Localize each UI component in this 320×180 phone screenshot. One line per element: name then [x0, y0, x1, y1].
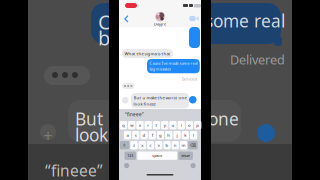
button[interactable]: w — [128, 121, 135, 129]
button[interactable]: ⇧ — [120, 141, 129, 149]
staticText: f — [152, 132, 153, 138]
button[interactable]: a — [124, 131, 131, 139]
staticText: p — [196, 122, 199, 128]
staticText: But u make the worst one — [133, 95, 186, 100]
staticText: Delivered — [182, 77, 197, 81]
button[interactable]: q — [120, 121, 127, 129]
button[interactable]: y — [161, 121, 168, 129]
button[interactable]: ⌫ — [188, 141, 198, 149]
button[interactable]: z — [130, 141, 138, 149]
staticText: big mistakes — [149, 66, 171, 72]
staticText: j — [177, 132, 178, 138]
button[interactable]: n — [172, 141, 179, 149]
staticText: Dayjre — [154, 21, 166, 27]
staticText: e — [139, 122, 141, 128]
button[interactable]: r — [145, 121, 152, 129]
staticText: What the sigma is that — [124, 51, 170, 56]
staticText: space — [152, 153, 162, 158]
button[interactable]: Emoji keyboard — [124, 163, 129, 168]
staticText: s — [135, 132, 137, 138]
staticText: k — [184, 132, 186, 138]
staticText: r — [147, 122, 149, 128]
staticText: x — [141, 142, 143, 148]
staticText: But u — [75, 107, 119, 131]
staticText: q — [122, 122, 125, 128]
staticText: g — [159, 132, 162, 138]
button[interactable]: o — [186, 121, 193, 129]
button[interactable]: c — [147, 141, 154, 149]
button[interactable]: d — [140, 131, 148, 139]
staticText: d — [143, 132, 146, 138]
staticText: b — [165, 142, 168, 148]
staticText: w — [130, 122, 133, 128]
button[interactable]: b — [163, 141, 171, 149]
button[interactable]: i — [178, 121, 185, 129]
staticText: return — [181, 153, 190, 158]
button[interactable]: l — [190, 131, 197, 139]
staticText: 123 — [127, 153, 133, 158]
staticText: b — [98, 24, 110, 51]
staticText: z — [133, 142, 135, 148]
staticText: ⌫ — [190, 143, 196, 148]
staticText: h — [167, 132, 170, 138]
button[interactable]: space — [137, 151, 177, 160]
button[interactable]: u — [169, 121, 177, 129]
staticText: look fineee — [133, 101, 155, 107]
staticText: “fineee” — [125, 111, 144, 118]
button[interactable]: t — [153, 121, 160, 129]
button[interactable]: s — [132, 131, 139, 139]
button[interactable]: x — [139, 141, 146, 149]
button[interactable]: j — [173, 131, 181, 139]
button[interactable]: g — [157, 131, 164, 139]
staticText: C — [98, 8, 111, 35]
staticText: u — [171, 122, 174, 128]
button[interactable]: Dictation — [190, 163, 196, 168]
staticText: l — [193, 132, 194, 138]
button[interactable]: m — [180, 141, 187, 149]
button[interactable]: return — [178, 151, 193, 160]
staticText: v — [158, 142, 160, 148]
staticText: ⇧ — [123, 143, 127, 148]
staticText: “fineee” — [45, 160, 103, 180]
button[interactable]: f — [149, 131, 156, 139]
button[interactable]: k — [182, 131, 189, 139]
button[interactable]: 123 — [124, 151, 136, 160]
staticText: y — [164, 122, 166, 128]
button[interactable]: p — [194, 121, 201, 129]
staticText: c — [149, 142, 151, 148]
staticText: some real — [205, 9, 285, 33]
staticText: Delivered — [230, 51, 285, 68]
button[interactable]: Send — [189, 96, 196, 103]
staticText: one — [208, 107, 239, 131]
button[interactable]: FaceTime video call — [187, 14, 198, 23]
staticText: look f — [75, 123, 119, 147]
button[interactable]: Add attachment — [122, 97, 128, 103]
staticText: o — [188, 122, 191, 128]
staticText: i — [181, 122, 182, 128]
staticText: Cause I've made some real — [149, 60, 197, 66]
button[interactable]: v — [155, 141, 162, 149]
button[interactable]: h — [165, 131, 172, 139]
staticText: + — [43, 125, 52, 147]
staticText: a — [127, 132, 129, 138]
button[interactable]: e — [136, 121, 144, 129]
staticText: n — [174, 142, 177, 148]
button[interactable]: Back — [122, 13, 130, 24]
staticText: t — [155, 122, 157, 128]
staticText: m — [181, 142, 185, 148]
